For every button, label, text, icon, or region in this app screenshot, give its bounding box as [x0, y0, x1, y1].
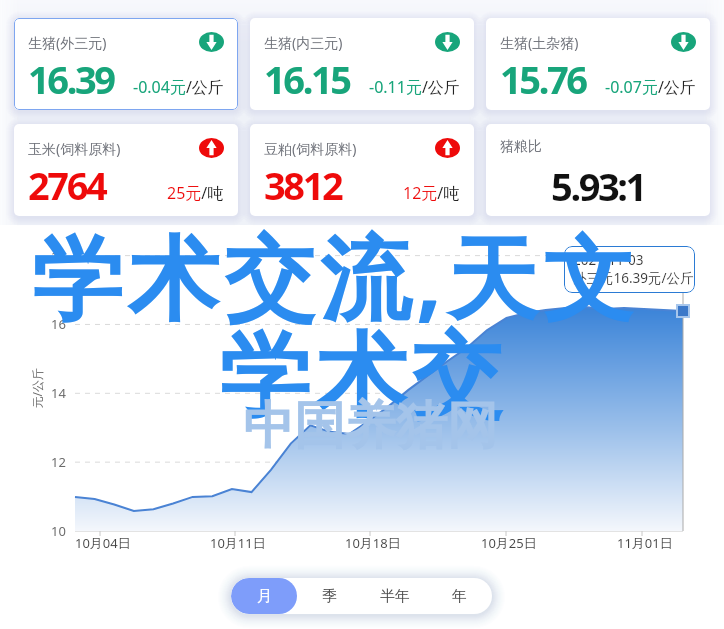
staticText: 元/公斤	[28, 367, 44, 408]
staticText: 14	[51, 384, 66, 402]
staticText: -0.07元/公斤	[605, 76, 696, 98]
staticText: 5.93:1	[500, 160, 696, 212]
staticText: 12元/吨	[403, 182, 460, 204]
staticText: 10月11日	[210, 534, 266, 552]
staticText: 生猪(外三元)	[28, 33, 107, 52]
staticText: 16.15	[264, 53, 350, 105]
button[interactable]: 玉米(饲料原料)	[14, 124, 238, 216]
staticText: 2021-11-03	[573, 251, 644, 269]
staticText: 25元/吨	[167, 182, 224, 204]
staticText: 16	[51, 315, 66, 333]
button[interactable]: 半年	[362, 578, 427, 614]
staticText: 学术交流,天文	[32, 214, 639, 338]
staticText: 2764	[28, 159, 106, 211]
button[interactable]: 价格下降	[671, 32, 696, 52]
staticText: 半年	[380, 587, 410, 606]
staticText: 学术交	[217, 319, 505, 434]
staticText: 10	[51, 522, 66, 540]
staticText: 中国养猪网	[243, 394, 498, 458]
staticText: -0.11元/公斤	[369, 76, 460, 98]
staticText: 生猪(内三元)	[264, 33, 343, 52]
staticText: 玉米(饲料原料)	[28, 139, 121, 158]
button[interactable]: 价格下降	[435, 32, 460, 52]
staticText: 12	[51, 453, 66, 471]
button[interactable]: 猪粮比	[486, 124, 710, 216]
button[interactable]: 年	[427, 578, 492, 614]
staticText: 生猪(土杂猪)	[500, 33, 579, 52]
button[interactable]: 月	[231, 578, 297, 614]
staticText: 16.39	[28, 53, 114, 105]
button[interactable]: 生猪(土杂猪)	[486, 18, 710, 110]
staticText: 15.76	[500, 53, 586, 105]
staticText: 18	[51, 247, 66, 265]
staticText: 11月01日	[617, 534, 673, 552]
button[interactable]: 生猪(内三元)	[250, 18, 474, 110]
staticText: 豆粕(饲料原料)	[264, 139, 357, 158]
staticText: 猪粮比	[500, 138, 542, 156]
staticText: 10月25日	[481, 534, 537, 552]
staticText: 月	[257, 587, 272, 606]
staticText: 10月18日	[345, 534, 401, 552]
button[interactable]: 价格下降	[199, 32, 224, 52]
staticText: 3812	[264, 159, 342, 211]
staticText: 外三元16.39元/公斤	[573, 269, 694, 287]
button[interactable]: 生猪(外三元)	[14, 18, 238, 110]
button[interactable]: 价格上涨	[435, 138, 460, 158]
button[interactable]: 季	[297, 578, 362, 614]
staticText: -0.04元/公斤	[133, 76, 224, 98]
staticText: 10月04日	[75, 534, 131, 552]
button[interactable]: 豆粕(饲料原料)	[250, 124, 474, 216]
staticText: 季	[322, 587, 337, 606]
button[interactable]: 价格上涨	[199, 138, 224, 158]
staticText: 年	[452, 587, 467, 606]
